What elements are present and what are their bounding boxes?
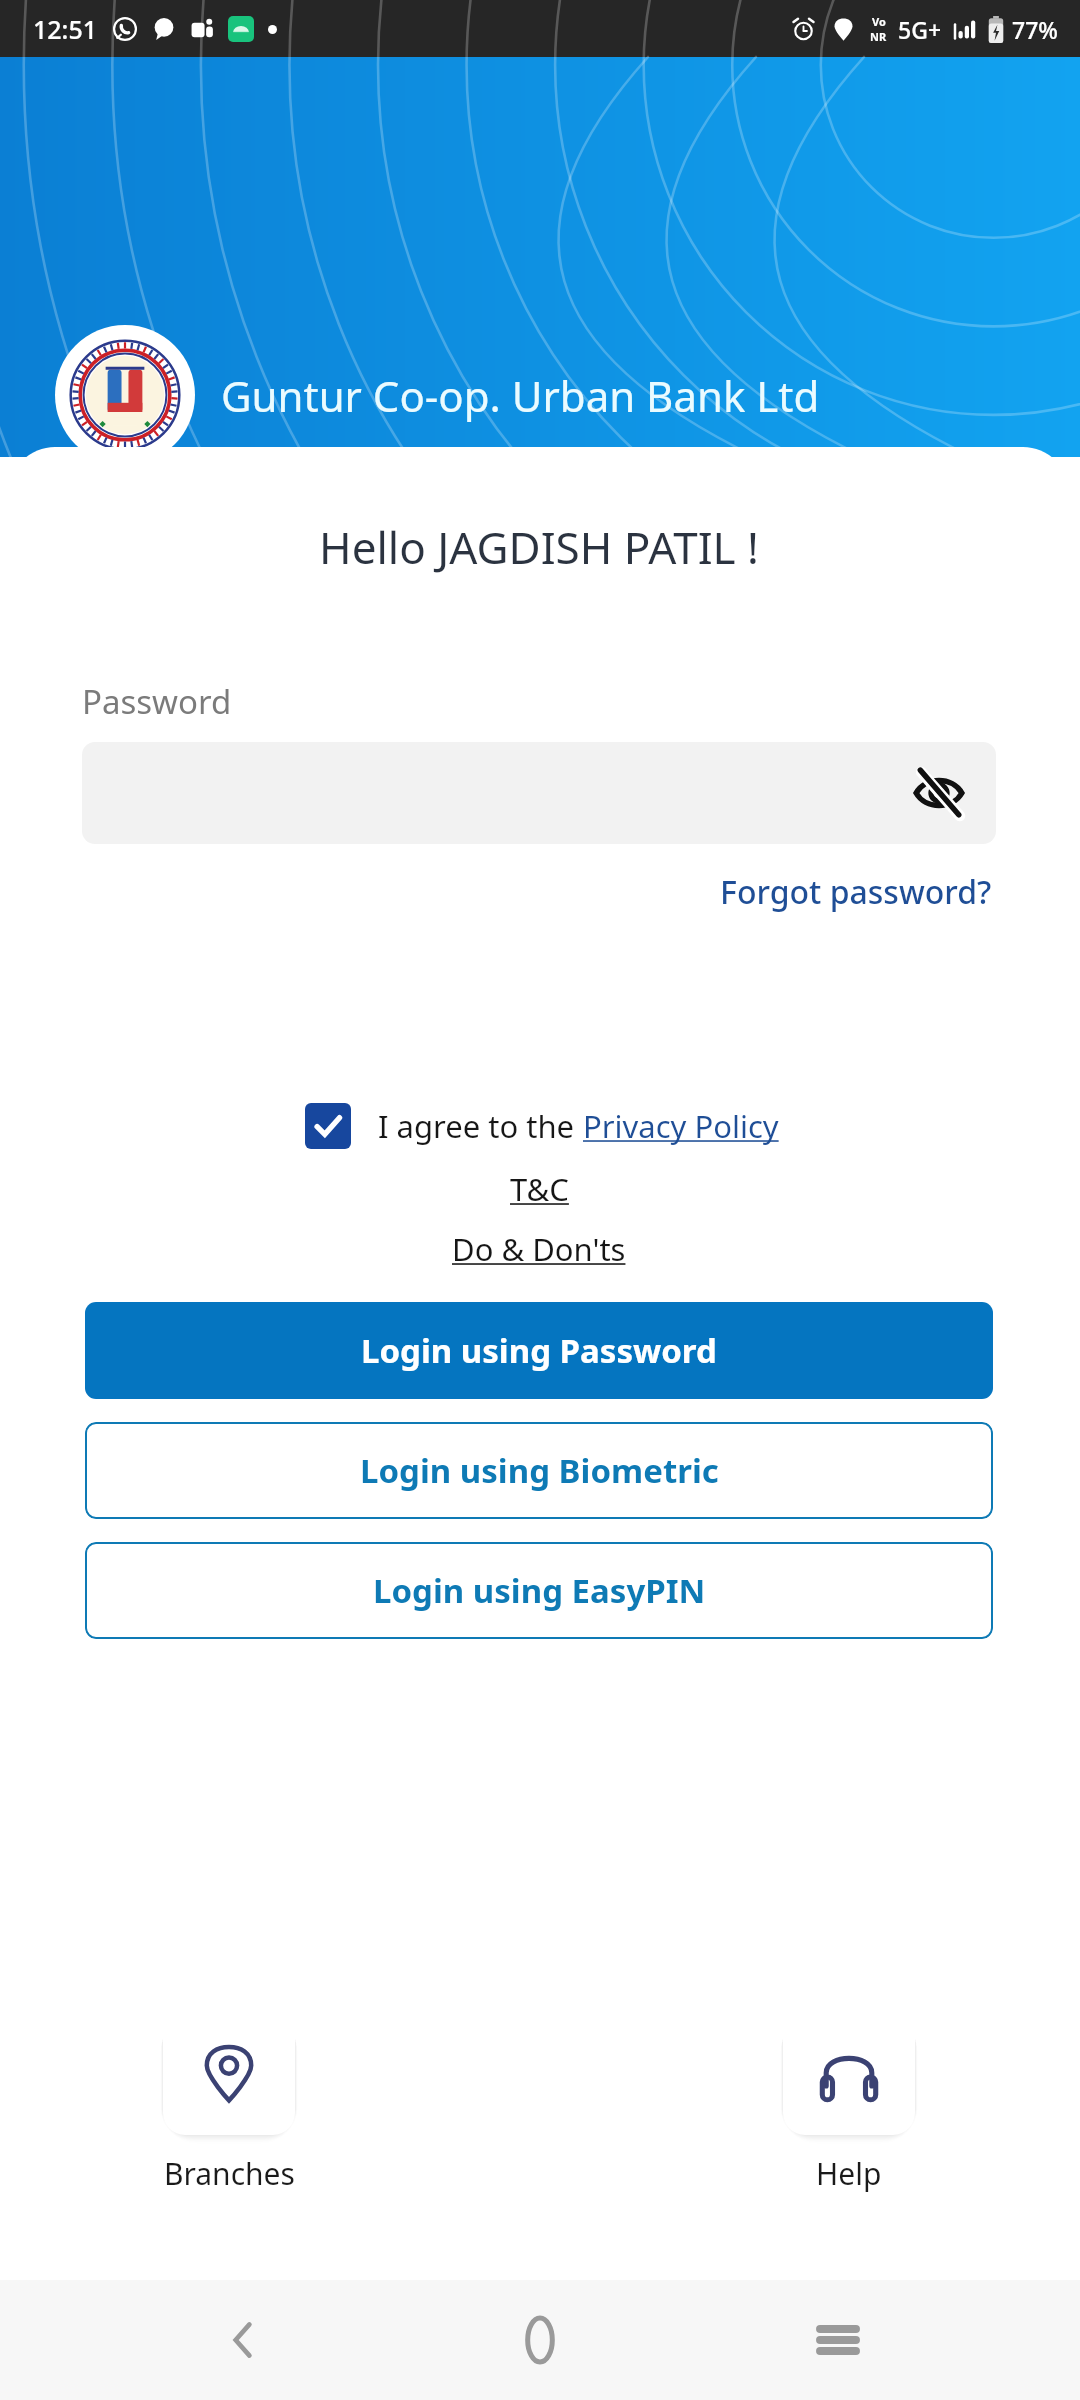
staticText: Vo bbox=[872, 14, 886, 29]
button[interactable]: Login using Password bbox=[85, 1302, 993, 1399]
staticText: NR bbox=[870, 29, 887, 44]
staticText: Login using EasyPIN bbox=[373, 1568, 706, 1613]
staticText: Forgot password? bbox=[720, 870, 992, 914]
button[interactable] bbox=[300, 1098, 356, 1154]
button[interactable]: Branches bbox=[159, 2009, 299, 2194]
button[interactable]: Login using Biometric bbox=[85, 1422, 993, 1519]
staticText: Login using Password bbox=[361, 1328, 717, 1373]
button[interactable]: Forgot password? bbox=[716, 866, 996, 918]
staticText: Help bbox=[816, 2153, 882, 2194]
staticText: Password bbox=[82, 679, 232, 724]
staticText: I agree to the bbox=[378, 1105, 583, 1147]
button[interactable]: Do & Don'ts bbox=[452, 1228, 626, 1270]
button[interactable]: Help bbox=[779, 2009, 919, 2194]
staticText: Do & Don'ts bbox=[452, 1228, 626, 1270]
staticText: Branches bbox=[164, 2153, 295, 2194]
button[interactable]: Recent apps bbox=[783, 2285, 893, 2395]
button[interactable]: Privacy Policy bbox=[583, 1105, 779, 1147]
staticText: 5G+ bbox=[898, 14, 942, 45]
staticText: 77% bbox=[1012, 14, 1058, 45]
button[interactable]: Show password bbox=[908, 762, 970, 824]
button[interactable]: Show password bbox=[82, 742, 996, 844]
staticText: Login using Biometric bbox=[360, 1448, 719, 1493]
staticText: Hello JAGDISH PATIL ! bbox=[9, 517, 1069, 577]
button[interactable]: Home bbox=[485, 2285, 595, 2395]
button[interactable]: T&C bbox=[510, 1168, 569, 1210]
button[interactable]: Login using EasyPIN bbox=[85, 1542, 993, 1639]
staticText: Privacy Policy bbox=[583, 1105, 779, 1147]
button[interactable]: Back bbox=[188, 2285, 298, 2395]
staticText: 12:51 bbox=[33, 12, 98, 46]
staticText: Guntur Co-op. Urban Bank Ltd bbox=[221, 367, 820, 424]
staticText: T&C bbox=[510, 1168, 569, 1210]
